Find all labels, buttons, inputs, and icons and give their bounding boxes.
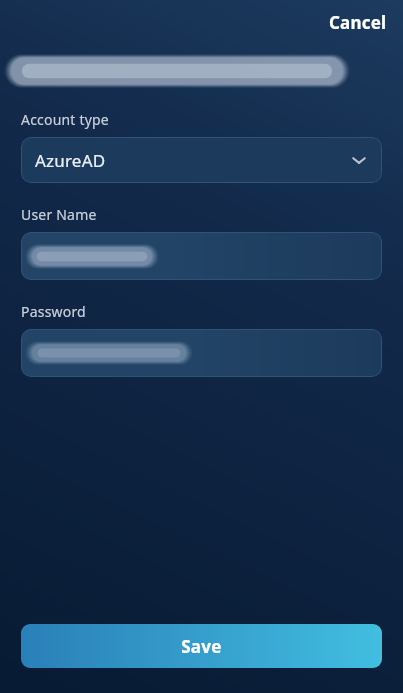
staticText: Password [21,302,86,321]
staticText: AzureAD [35,149,106,172]
staticText: Cancel [329,11,387,34]
staticText: User Name [21,205,97,224]
button[interactable]: Cancel [313,5,403,40]
staticText: Account type [21,110,109,129]
button[interactable] [21,232,382,280]
staticText: Save [181,635,222,658]
button[interactable]: Save [21,624,382,668]
button[interactable]: AzureAD [21,137,382,183]
button[interactable] [21,329,382,377]
other: Expand account type [350,151,368,169]
